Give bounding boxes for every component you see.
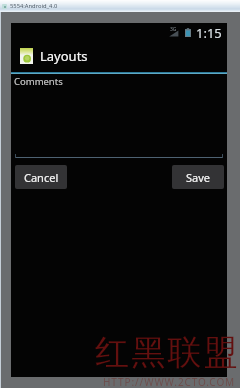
- other: Mobile signal 3G: [169, 26, 182, 37]
- staticText: Comments: [14, 75, 63, 88]
- staticText: 1:15: [196, 24, 222, 41]
- button[interactable]: Cancel: [15, 165, 67, 189]
- staticText: Cancel: [24, 170, 59, 185]
- staticText: Save: [186, 170, 211, 185]
- staticText: 3G: [170, 26, 177, 33]
- staticText: Layouts: [40, 47, 88, 65]
- staticText: HTTP://WWW.2CTO.COM: [103, 375, 236, 388]
- button[interactable]: Save: [172, 165, 224, 189]
- staticText: 红黑联盟: [95, 331, 240, 374]
- other: Battery: [185, 28, 191, 37]
- staticText: 5554:Android_4.0: [10, 2, 58, 10]
